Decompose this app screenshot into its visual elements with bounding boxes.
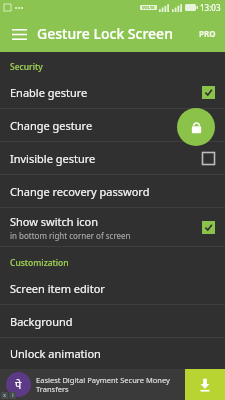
staticText: Security [10, 61, 43, 73]
staticText: PRO [199, 28, 216, 39]
staticText: Background [10, 314, 73, 329]
staticText: Customization [10, 257, 69, 269]
button[interactable]: Menu [6, 21, 32, 47]
staticText: Gesture Lock Screen [37, 24, 173, 43]
staticText: x [3, 392, 6, 399]
button[interactable]: Background [0, 305, 225, 337]
staticText: Screen item editor [10, 281, 105, 296]
staticText: Show switch icon [10, 214, 99, 229]
staticText: in bottom right corner of screen [10, 230, 131, 241]
button[interactable]: Screen item editor [0, 272, 225, 304]
staticText: Easiest Digital Payment Secure Money Tra… [36, 375, 181, 394]
button[interactable]: Invisible gesture [0, 142, 225, 174]
button[interactable]: Unlock animation [0, 338, 225, 369]
button[interactable]: Change recovery password [0, 175, 225, 207]
staticText: 13:03 [200, 2, 221, 13]
staticText: Invisible gesture [10, 151, 96, 166]
button[interactable]: PRO [195, 24, 220, 43]
button[interactable]: Lock [177, 108, 215, 146]
staticText: VOLTE [142, 5, 155, 10]
staticText: पे [15, 377, 22, 392]
button[interactable]: Install [185, 369, 225, 400]
button[interactable]: Enable gesture [0, 76, 225, 108]
staticText: Change gesture [10, 118, 93, 133]
staticText: Unlock animation [10, 346, 101, 361]
staticText: Change recovery password [10, 184, 150, 199]
button[interactable]: Change gesture [0, 109, 225, 141]
staticText: i [12, 392, 14, 399]
button[interactable]: Show switch icon [0, 208, 225, 246]
staticText: Enable gesture [10, 85, 88, 100]
